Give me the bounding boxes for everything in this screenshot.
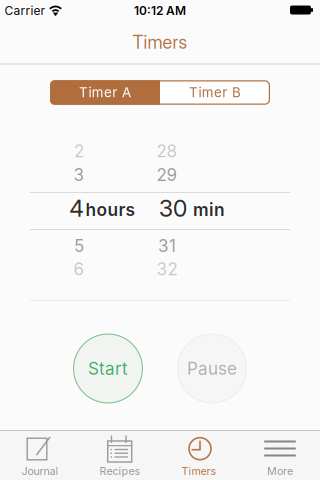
button[interactable]: Timer B	[160, 80, 270, 105]
button[interactable]: Journal	[0, 431, 80, 480]
button[interactable]: Start	[73, 333, 143, 403]
staticText: Start	[88, 358, 128, 379]
staticText: Timers	[181, 464, 216, 477]
staticText: Timer A	[79, 84, 131, 100]
staticText: hours	[85, 199, 135, 220]
button[interactable]: Timer A	[50, 80, 160, 105]
staticText: min	[193, 199, 225, 220]
staticText: 32	[156, 259, 177, 279]
staticText: Carrier	[4, 3, 45, 18]
staticText: 4	[69, 194, 84, 222]
staticText: 10:12 AM	[134, 3, 186, 18]
staticText: Recipes	[99, 464, 140, 477]
button[interactable]: More	[240, 431, 320, 480]
staticText: Timer B	[189, 84, 241, 100]
staticText: 6	[73, 259, 84, 279]
staticText: 5	[74, 236, 84, 256]
staticText: 2	[74, 141, 84, 161]
button[interactable]: Pause	[177, 333, 247, 403]
button[interactable]: Timers	[160, 431, 240, 480]
staticText: Timers	[132, 31, 187, 53]
staticText: 31	[158, 236, 176, 256]
staticText: Pause	[187, 358, 237, 379]
staticText: 3	[73, 164, 84, 185]
staticText: Journal	[21, 464, 58, 477]
staticText: 28	[156, 141, 177, 161]
button[interactable]: Recipes	[80, 431, 160, 480]
staticText: More	[267, 464, 293, 477]
staticText: 29	[156, 164, 177, 185]
staticText: 30	[159, 194, 188, 222]
